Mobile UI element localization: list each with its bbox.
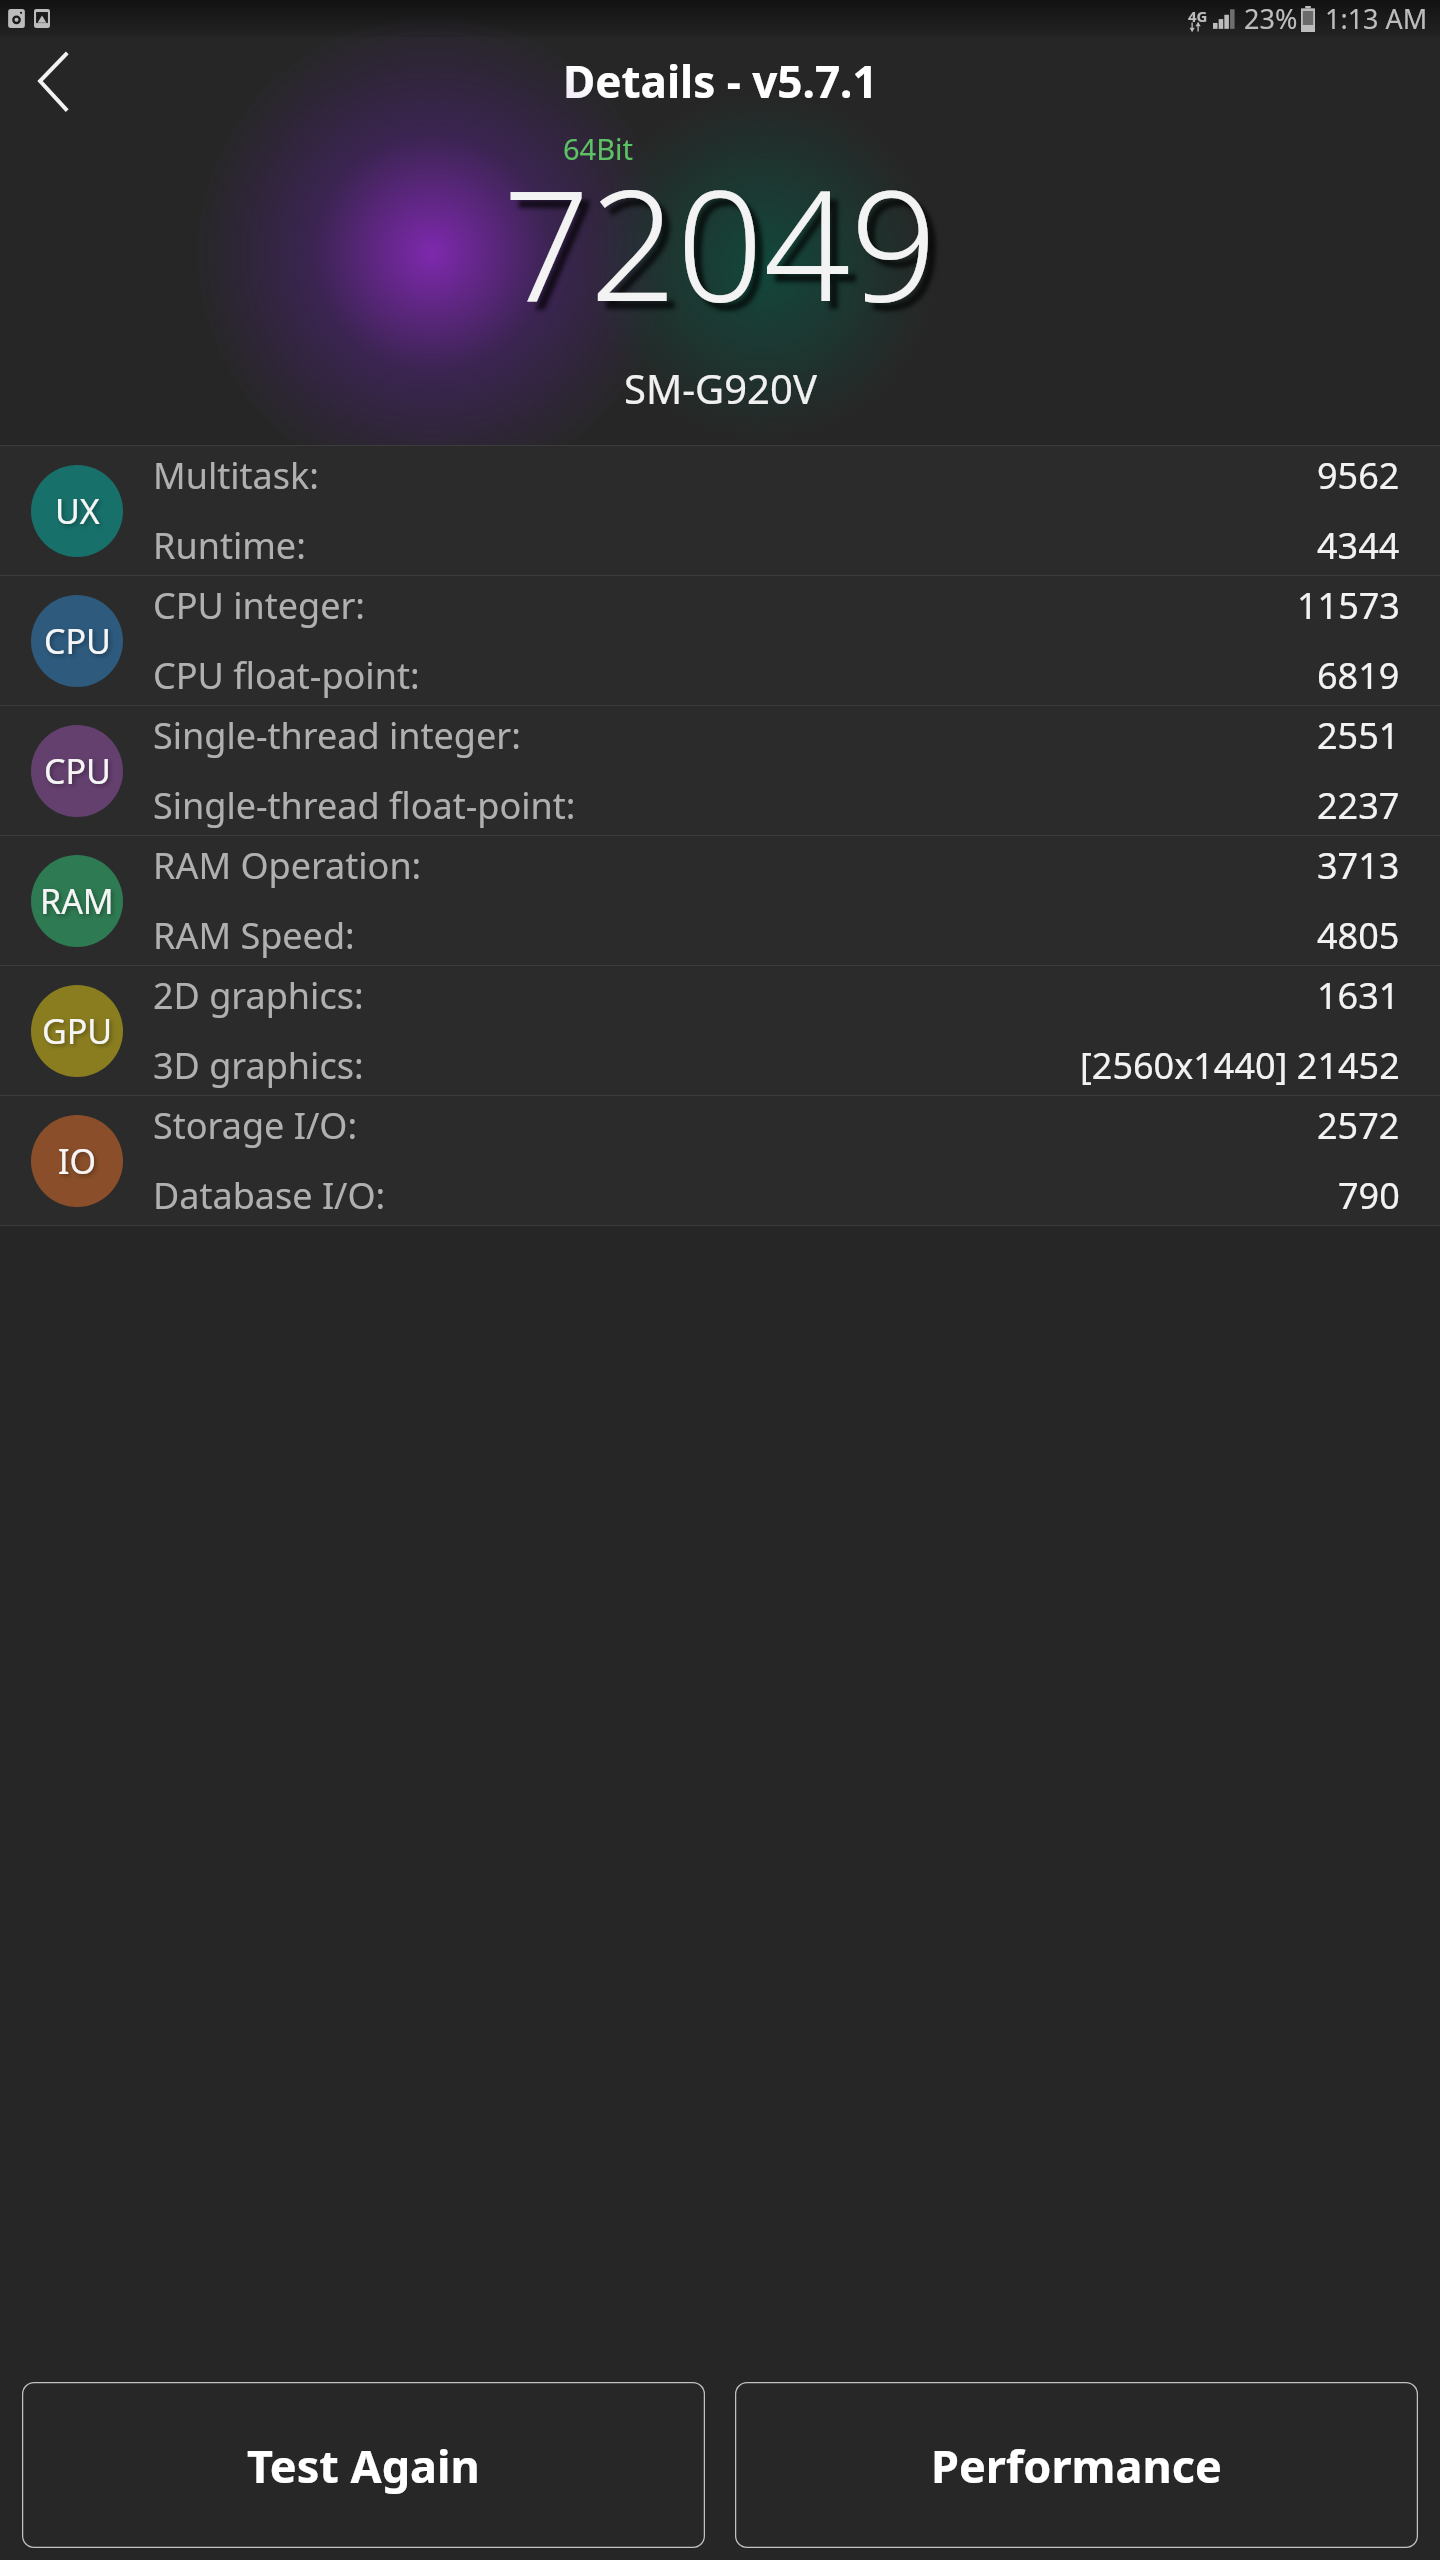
button[interactable]: Back xyxy=(18,43,94,119)
staticText: 9562 xyxy=(1317,451,1400,500)
staticText: CPU xyxy=(44,748,111,794)
staticText: 64Bit xyxy=(563,129,633,168)
button[interactable]: IO xyxy=(0,1096,1440,1225)
staticText: SM-G920V xyxy=(624,361,817,415)
staticText: RAM Operation: xyxy=(153,841,422,890)
staticText: 2572 xyxy=(1317,1101,1400,1150)
staticText: RAM xyxy=(40,878,114,924)
staticText: 1631 xyxy=(1317,971,1400,1020)
staticText: 1:13 AM xyxy=(1325,0,1428,37)
staticText: Single-thread float-point: xyxy=(153,781,576,830)
staticText: 11573 xyxy=(1297,581,1400,630)
staticText: 3713 xyxy=(1317,841,1400,890)
staticText: Test Again xyxy=(247,2435,480,2496)
staticText: CPU integer: xyxy=(153,581,366,630)
button[interactable]: RAM xyxy=(0,836,1440,965)
staticText: 4G xyxy=(1188,6,1208,26)
staticText: IO xyxy=(58,1138,97,1184)
button[interactable]: UX xyxy=(0,446,1440,575)
staticText: Database I/O: xyxy=(153,1171,386,1220)
button[interactable]: CPU xyxy=(0,706,1440,835)
staticText: 790 xyxy=(1338,1171,1400,1220)
staticText: GPU xyxy=(42,1008,113,1054)
staticText: Details - v5.7.1 xyxy=(563,51,878,111)
staticText: Multitask: xyxy=(153,451,319,500)
staticText: Storage I/O: xyxy=(153,1101,358,1150)
button[interactable]: Performance xyxy=(735,2382,1418,2548)
staticText: 2551 xyxy=(1317,711,1400,760)
staticText: Single-thread integer: xyxy=(153,711,521,760)
staticText: Performance xyxy=(931,2435,1222,2496)
staticText: 6819 xyxy=(1317,651,1400,700)
button[interactable]: Test Again xyxy=(22,2382,705,2548)
staticText: 2237 xyxy=(1317,781,1400,830)
staticText: 72049 xyxy=(503,139,937,346)
staticText: RAM Speed: xyxy=(153,911,355,960)
staticText: [2560x1440] 21452 xyxy=(1080,1041,1400,1090)
staticText: Runtime: xyxy=(153,521,306,570)
button[interactable]: CPU xyxy=(0,576,1440,705)
staticText: 4805 xyxy=(1317,911,1400,960)
staticText: CPU xyxy=(44,618,111,664)
staticText: CPU float-point: xyxy=(153,651,420,700)
staticText: 23% xyxy=(1244,0,1298,37)
staticText: 3D graphics: xyxy=(153,1041,364,1090)
staticText: 2D graphics: xyxy=(153,971,364,1020)
staticText: UX xyxy=(55,488,100,534)
button[interactable]: GPU xyxy=(0,966,1440,1095)
staticText: 4344 xyxy=(1317,521,1400,570)
